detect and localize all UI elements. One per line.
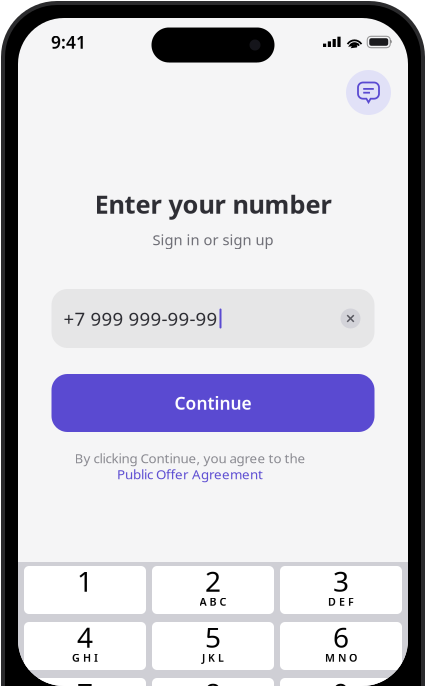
staticText: A B C	[199, 594, 226, 609]
staticText: Public Offer Agreement	[117, 465, 263, 483]
staticText: 3	[333, 562, 349, 600]
staticText: 1	[77, 562, 93, 600]
button[interactable]: 1	[24, 566, 146, 614]
staticText: Sign in or sign up	[152, 230, 273, 249]
staticText: 8	[205, 674, 221, 686]
button[interactable]: 8	[152, 678, 274, 686]
button[interactable]: Support chat	[346, 70, 391, 115]
button[interactable]: Clear	[340, 308, 360, 328]
staticText: 4	[77, 618, 93, 656]
button[interactable]: Continue	[51, 374, 374, 432]
button[interactable]: 4	[24, 622, 146, 670]
button[interactable]: 9	[280, 678, 402, 686]
button[interactable]: 7	[24, 678, 146, 686]
staticText: 2	[205, 562, 221, 600]
staticText: 6	[333, 618, 349, 656]
staticText: 9	[333, 674, 349, 686]
staticText: G H I	[72, 650, 98, 665]
button[interactable]: 6	[280, 622, 402, 670]
staticText: 5	[205, 618, 221, 656]
staticText: J K L	[202, 650, 224, 665]
button[interactable]: Public Offer Agreement	[117, 467, 263, 481]
staticText: By clicking Continue, you agree to the	[74, 449, 305, 467]
staticText: 7	[77, 674, 93, 686]
staticText: +7 999 999-99-99	[63, 306, 217, 331]
staticText: M N O	[325, 650, 357, 665]
button[interactable]: 5	[152, 622, 274, 670]
staticText: D E F	[328, 594, 354, 609]
staticText: 9:41	[51, 30, 86, 53]
button[interactable]: 2	[152, 566, 274, 614]
staticText: Enter your number	[94, 187, 331, 221]
button[interactable]: 3	[280, 566, 402, 614]
staticText: Continue	[174, 391, 251, 414]
